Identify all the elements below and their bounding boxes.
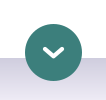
button[interactable]: Collapse: [25, 24, 82, 81]
